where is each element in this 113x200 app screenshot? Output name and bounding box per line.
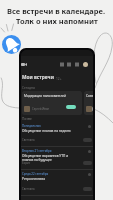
- button[interactable]: New meeting: [21, 62, 27, 67]
- staticText: Светлана: [22, 138, 35, 142]
- staticText: Мои встречи: [22, 74, 54, 81]
- staticText: Обсуждение планов на неделю: [22, 129, 71, 133]
- staticText: Среда 22 сентября: [22, 172, 49, 176]
- staticText: Светлана: [22, 187, 35, 191]
- staticText: Сегодня: [22, 86, 35, 90]
- staticText: Ретроспектива: [22, 177, 45, 181]
- staticText: 12+: [56, 77, 62, 81]
- button[interactable]: Совещ: [84, 91, 93, 115]
- button[interactable]: Модерация пользователей: [22, 91, 82, 115]
- staticText: Толк о них напомнит: [16, 16, 98, 26]
- staticText: Совещ: [86, 94, 93, 98]
- staticText: Вторник 21 сентября: [22, 149, 52, 153]
- staticText: Все встречи в календаре.: [7, 6, 106, 16]
- button[interactable]: Toolbar action 2: [75, 62, 79, 67]
- button[interactable]: Profile: [83, 62, 88, 67]
- button[interactable]: Toolbar action 1: [67, 62, 71, 67]
- staticText: Понедельник: [22, 124, 41, 128]
- button[interactable]: Toolbar action 0: [60, 62, 64, 67]
- staticText: Сергей Иван: [32, 107, 50, 111]
- button[interactable]: Среда 22 сентября: [21, 169, 93, 195]
- button[interactable]: Вторник 21 сентября: [21, 146, 93, 169]
- staticText: Модерация пользователей: [24, 94, 66, 98]
- staticText: Обсуждение вариантов УТП и планов на буд…: [22, 154, 72, 162]
- button[interactable]: Join: [66, 105, 76, 109]
- button[interactable]: Понедельник: [21, 121, 93, 146]
- staticText: Борис: [22, 161, 31, 165]
- staticText: Позже: [22, 117, 32, 121]
- other: Reminder: [2, 35, 21, 54]
